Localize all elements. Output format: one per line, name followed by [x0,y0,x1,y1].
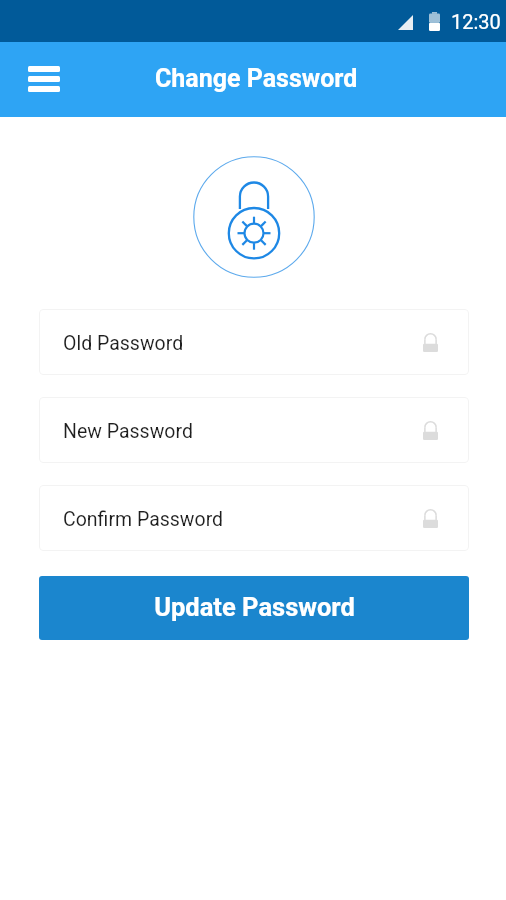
staticText: Old Password [63,332,184,355]
other: Password hidden [423,509,438,528]
staticText: 12:30 [451,10,501,33]
button[interactable]: New Password [39,397,469,463]
button[interactable]: Open navigation menu [20,56,68,104]
other: Password hidden [423,333,438,352]
button[interactable]: Update Password [39,576,469,640]
other: Password hidden [423,421,438,440]
staticText: New Password [63,420,193,443]
button[interactable]: Old Password [39,309,469,375]
staticText: Update Password [154,592,355,622]
staticText: Confirm Password [63,508,224,531]
button[interactable]: Confirm Password [39,485,469,551]
staticText: Change Password [155,64,358,93]
